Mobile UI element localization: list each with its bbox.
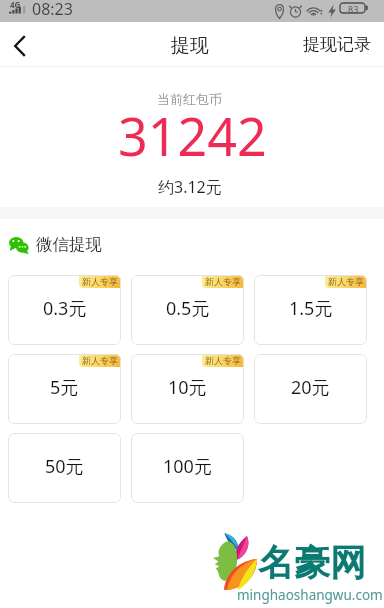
staticText: 4G (10, 0, 21, 10)
button[interactable]: 20元 (254, 354, 367, 424)
button[interactable]: 1.5元 (254, 275, 367, 345)
staticText: minghaoshangwu.com (237, 586, 383, 604)
button[interactable]: 提现记录 (290, 24, 384, 65)
staticText: 新人专享 (82, 355, 118, 366)
staticText: 20元 (291, 375, 330, 400)
staticText: 提现 (171, 34, 209, 58)
staticText: 约3.12元 (158, 176, 222, 197)
staticText: 1.5元 (289, 296, 333, 321)
staticText: 0.5元 (166, 296, 210, 321)
staticText: 10元 (168, 375, 207, 400)
button[interactable]: 10元 (131, 354, 244, 424)
staticText: 提现记录 (303, 34, 371, 55)
staticText: 50元 (45, 454, 84, 479)
staticText: 31242 (118, 100, 267, 171)
staticText: 0.3元 (43, 296, 87, 321)
staticText: 08:23 (32, 0, 73, 20)
staticText: 100元 (163, 454, 212, 479)
button[interactable]: 50元 (8, 433, 121, 503)
staticText: 名豪网 (258, 540, 366, 585)
button[interactable]: 0.3元 (8, 275, 121, 345)
staticText: 新人专享 (205, 276, 241, 287)
staticText: 5元 (50, 375, 79, 400)
button[interactable]: 5元 (8, 354, 121, 424)
staticText: 新人专享 (205, 355, 241, 366)
button[interactable]: Back (2, 28, 36, 62)
staticText: 当前红包币 (157, 91, 222, 107)
staticText: 新人专享 (328, 276, 364, 287)
staticText: 83 (348, 3, 359, 13)
button[interactable]: 100元 (131, 433, 244, 503)
staticText: 新人专享 (82, 276, 118, 287)
button[interactable]: 0.5元 (131, 275, 244, 345)
staticText: 微信提现 (36, 234, 102, 255)
